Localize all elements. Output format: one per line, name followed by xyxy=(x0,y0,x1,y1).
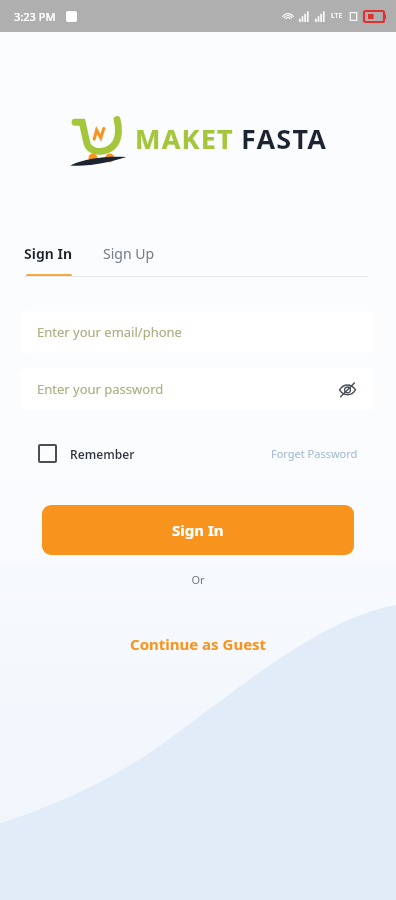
button[interactable]: Show password xyxy=(335,377,359,401)
button[interactable]: Sign Up xyxy=(103,244,155,263)
button[interactable]: Sign In xyxy=(24,244,73,277)
staticText: Continue as Guest xyxy=(130,634,267,654)
button[interactable]: Remember xyxy=(38,444,135,463)
staticText: Enter your email/phone xyxy=(37,323,182,341)
staticText: 3:23 PM xyxy=(14,9,56,24)
button[interactable]: Forget Password xyxy=(271,446,358,461)
staticText: Or xyxy=(0,572,396,587)
staticText: Sign Up xyxy=(103,244,155,263)
staticText: FASTA xyxy=(241,120,328,157)
staticText: MAKET xyxy=(135,120,234,157)
button[interactable]: Sign In xyxy=(42,505,354,555)
staticText: Sign In xyxy=(24,244,73,263)
staticText: LTE xyxy=(331,11,343,21)
staticText: Forget Password xyxy=(271,446,358,461)
button[interactable]: Continue as Guest xyxy=(0,628,396,660)
button[interactable]: Enter your password xyxy=(21,368,375,410)
staticText: Remember xyxy=(70,446,135,462)
button[interactable]: Enter your email/phone xyxy=(21,311,375,353)
staticText: Sign In xyxy=(172,520,224,540)
staticText: Enter your password xyxy=(37,380,164,398)
